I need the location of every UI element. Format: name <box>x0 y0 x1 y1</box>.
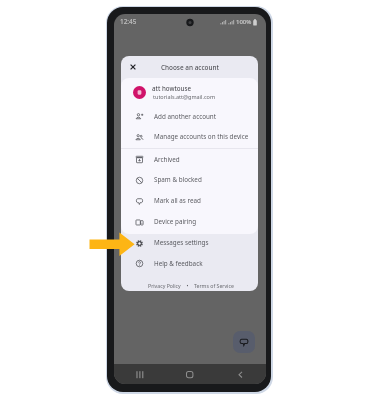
button[interactable] <box>121 191 258 212</box>
staticText: 100% <box>236 18 252 26</box>
button[interactable] <box>121 170 258 191</box>
staticText: 12:45 <box>120 17 137 26</box>
button[interactable] <box>121 211 258 232</box>
staticText: • <box>181 282 194 289</box>
staticText: Help & feedback <box>154 259 203 268</box>
staticText: Spam & blocked <box>154 175 202 184</box>
staticText: Messages settings <box>154 238 209 247</box>
staticText: Choose an account <box>161 63 219 72</box>
staticText: tutorials.att@gmail.com <box>153 93 216 100</box>
staticText: Add another account <box>154 112 217 121</box>
button[interactable] <box>121 149 258 170</box>
button[interactable] <box>121 82 258 103</box>
button[interactable]: Back <box>215 364 266 384</box>
button[interactable] <box>121 127 258 148</box>
staticText: att howtouse <box>152 84 192 92</box>
button[interactable] <box>121 232 258 253</box>
button[interactable]: Recent apps <box>114 364 164 384</box>
button[interactable]: Home <box>164 364 215 384</box>
staticText: Manage accounts on this device <box>154 132 249 141</box>
button[interactable]: Terms of Service <box>194 282 234 289</box>
button[interactable] <box>121 253 258 274</box>
button[interactable]: Start chat <box>233 331 255 353</box>
staticText: Mark all as read <box>154 196 201 205</box>
button[interactable]: Close <box>126 60 140 74</box>
button[interactable] <box>121 106 258 127</box>
staticText: Device pairing <box>154 217 197 226</box>
button[interactable]: Privacy Policy <box>148 282 181 289</box>
staticText: Archived <box>154 155 180 164</box>
